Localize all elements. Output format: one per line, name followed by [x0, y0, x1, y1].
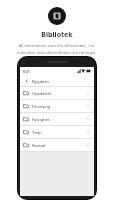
staticText: Bygdem [32, 78, 49, 84]
button[interactable]: Uppdatter [20, 87, 94, 99]
button[interactable]: Finansing [20, 100, 94, 112]
staticText: 8:41 [23, 69, 31, 74]
button[interactable]: More options [85, 129, 91, 135]
button[interactable]: More options [85, 103, 91, 109]
staticText: Finansing [32, 104, 51, 109]
staticText: Fastighet [32, 117, 50, 122]
button[interactable]: Fastighet [20, 113, 94, 125]
button[interactable]: Bibliotek app icon [48, 7, 66, 25]
button[interactable]: More options [85, 142, 91, 148]
staticText: Bibliotek [41, 30, 73, 40]
staticText: All information som hör till boendet, i … [13, 43, 100, 55]
button[interactable]: Bostad [20, 139, 94, 151]
button[interactable]: More options [85, 116, 91, 122]
button[interactable]: More options [85, 90, 91, 96]
button[interactable]: Back [23, 77, 30, 84]
staticText: Tvspl [32, 130, 42, 135]
staticText: Uppdatter [32, 91, 52, 96]
button[interactable]: Tvspl [20, 126, 94, 138]
staticText: Bostad [32, 143, 46, 148]
